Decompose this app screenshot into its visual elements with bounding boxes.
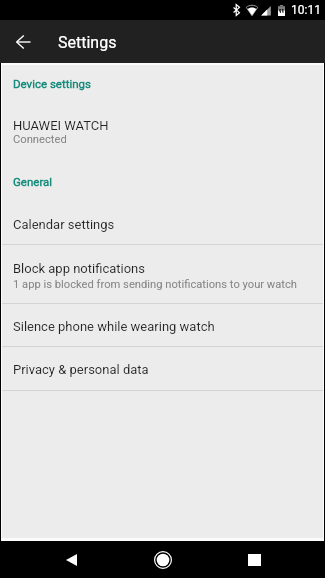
staticText: Silence phone while wearing watch [13,319,215,334]
staticText: Connected [13,133,67,146]
staticText: HUAWEI WATCH [13,118,109,133]
button[interactable]: Navigate up [8,20,39,63]
staticText: Privacy & personal data [13,362,149,377]
staticText: 10:11 [291,3,321,17]
staticText: General [13,175,53,188]
staticText: Calendar settings [13,217,115,232]
button[interactable]: HUAWEI WATCH [2,108,323,154]
staticText: Settings [58,33,117,52]
staticText: Device settings [13,77,92,90]
button[interactable]: Silence phone while wearing watch [2,305,323,346]
staticText: 1 app is blocked from sending notificati… [13,278,298,291]
button[interactable]: Calendar settings [2,203,323,244]
button[interactable]: Recent apps [230,541,278,578]
button[interactable]: Privacy & personal data [2,348,323,390]
staticText: Block app notifications [13,261,145,276]
button[interactable]: Back [47,541,95,578]
button[interactable]: Home [139,541,187,578]
button[interactable]: Block app notifications [2,246,323,303]
